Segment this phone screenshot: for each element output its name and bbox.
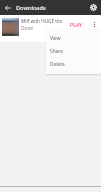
button[interactable]: View xyxy=(46,32,101,45)
button[interactable]: Milf with HUGE tits f… xyxy=(0,15,101,42)
staticText: Done xyxy=(21,25,34,32)
button[interactable]: Settings xyxy=(86,0,101,15)
button[interactable]: Back xyxy=(0,0,15,15)
button[interactable]: PLAY xyxy=(67,19,86,30)
button[interactable]: Share xyxy=(46,45,101,58)
staticText: PLAY xyxy=(70,21,83,28)
staticText: Share xyxy=(50,48,63,55)
staticText: Milf with HUGE tits f… xyxy=(21,18,63,24)
staticText: View xyxy=(50,35,61,42)
button[interactable]: More options xyxy=(88,18,101,31)
button[interactable]: Delete xyxy=(46,58,101,71)
staticText: Downloads xyxy=(16,4,46,12)
staticText: Delete xyxy=(50,61,65,68)
